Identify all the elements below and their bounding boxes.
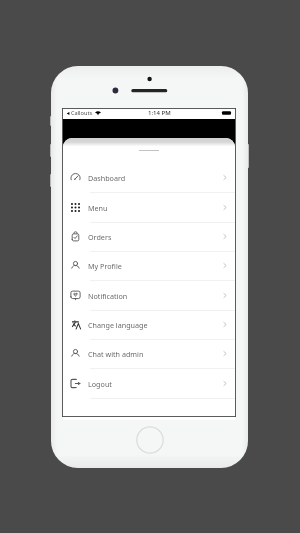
staticText: Orders [88, 232, 112, 242]
staticText: Change language [88, 320, 148, 330]
staticText: My Profile [88, 261, 122, 271]
button[interactable]: My Profile [63, 251, 235, 281]
staticText: 1:14 PM [148, 109, 171, 117]
button[interactable]: Orders [63, 222, 235, 252]
staticText: Chat with admin [88, 349, 144, 359]
staticText: Logout [88, 379, 112, 389]
button[interactable]: Notification [63, 281, 235, 311]
button[interactable]: Menu [63, 193, 235, 223]
button[interactable]: Chat with admin [63, 339, 235, 369]
button[interactable]: Logout [63, 369, 235, 399]
staticText: Menu [88, 203, 108, 213]
staticText: Dashboard [88, 173, 126, 183]
button[interactable]: Change language [63, 310, 235, 340]
staticText: Notification [88, 291, 128, 301]
button[interactable]: Dashboard [63, 163, 235, 193]
staticText: Callouts [71, 109, 93, 117]
